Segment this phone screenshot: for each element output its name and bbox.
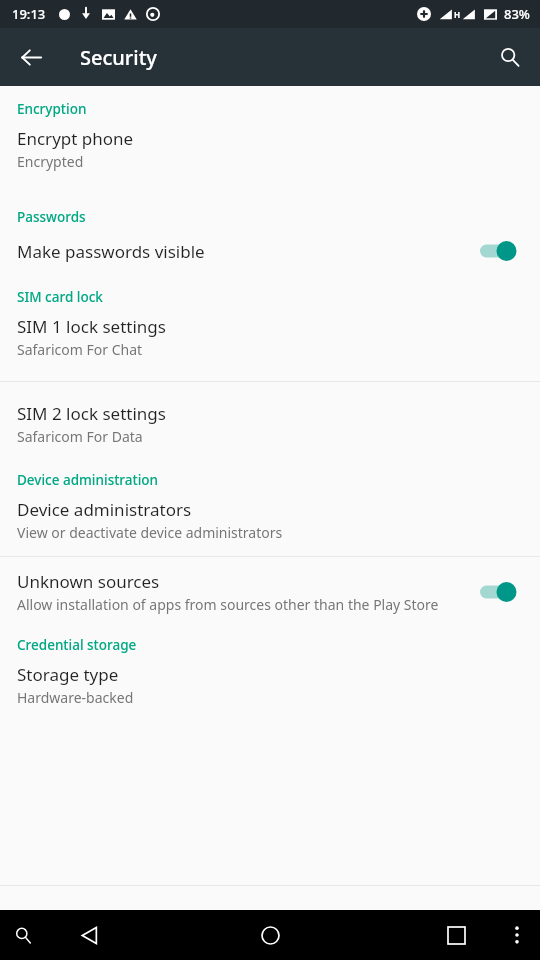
button[interactable]: Make passwords visible [0, 226, 540, 264]
button[interactable]: Storage type [0, 654, 540, 707]
staticText: Passwords [17, 208, 86, 226]
button[interactable]: SIM 1 lock settings [0, 306, 540, 359]
staticText: View or deactivate device administrators [17, 523, 283, 542]
staticText: Encrypted [17, 152, 84, 171]
staticText: Security [80, 44, 157, 71]
button[interactable]: Search [4, 916, 42, 954]
staticText: Device administrators [17, 498, 192, 521]
button[interactable]: Recents [436, 915, 476, 955]
button[interactable]: Encrypt phone [0, 118, 540, 171]
staticText: Encrypt phone [17, 127, 134, 150]
button[interactable]: Unknown sources [0, 557, 540, 614]
staticText: 19:13 [12, 5, 46, 23]
staticText: SIM 2 lock settings [17, 402, 166, 425]
staticText: Credential storage [17, 636, 137, 654]
staticText: Safaricom For Data [17, 427, 143, 446]
staticText: Make passwords visible [17, 240, 205, 263]
button[interactable]: Home [249, 914, 291, 956]
staticText: Safaricom For Chat [17, 340, 143, 359]
button[interactable]: Search [488, 35, 532, 79]
staticText: 83% [504, 5, 530, 23]
button[interactable]: More options [500, 918, 534, 952]
staticText: SIM card lock [17, 288, 103, 306]
staticText: Device administration [17, 471, 159, 489]
button[interactable]: Toggle [480, 238, 526, 264]
staticText: Encryption [17, 100, 87, 118]
staticText: Hardware-backed [17, 688, 134, 707]
staticText: Storage type [17, 663, 119, 686]
staticText: SIM 1 lock settings [17, 315, 166, 338]
staticText: Allow installation of apps from sources … [17, 595, 439, 614]
button[interactable]: SIM 2 lock settings [0, 382, 540, 446]
staticText: H [454, 9, 461, 20]
button[interactable]: Back [9, 35, 53, 79]
button[interactable]: Back [69, 915, 109, 955]
staticText: Unknown sources [17, 570, 160, 593]
button[interactable]: Toggle [480, 579, 526, 605]
button[interactable]: Device administrators [0, 489, 540, 542]
